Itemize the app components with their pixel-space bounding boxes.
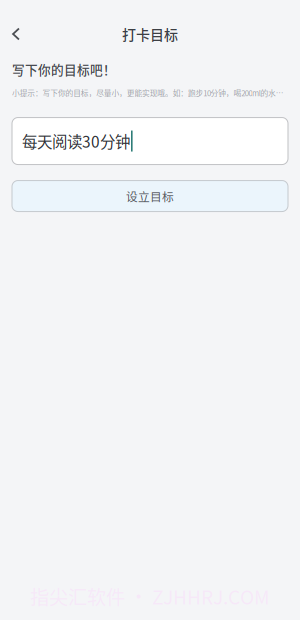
staticText: 每天阅读30分钟 [22,130,130,152]
staticText: 打卡目标 [122,24,178,44]
button[interactable]: 设立目标 [12,180,288,211]
staticText: 写下你的目标吧！ [12,60,116,78]
staticText: 设立目标 [126,187,174,204]
button[interactable]: Back [4,21,28,47]
button[interactable]: 每天阅读30分钟 [12,117,288,164]
staticText: 小提示：写下你的目标，尽量小，更能实现哦。如：跑步10分钟，喝200ml的水… [12,87,284,98]
staticText: 指尖汇软件 · ZJHHRJ.COM [30,582,270,610]
